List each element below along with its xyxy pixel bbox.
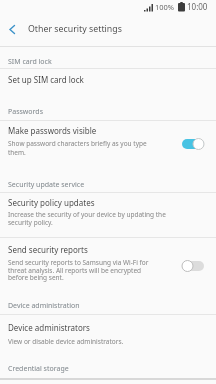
staticText: Send security reports to Samsung via Wi-… [8,258,149,267]
button[interactable] [182,138,206,150]
button[interactable]: Send security reports [0,238,216,290]
staticText: before being sent. [8,273,64,282]
button[interactable]: Make passwords visible [0,121,216,162]
staticText: them. [8,148,26,157]
button[interactable]: Security policy updates [0,193,216,237]
staticText: Security policy updates [8,197,95,208]
staticText: Passwords [8,107,44,117]
staticText: Device administrators [8,322,90,333]
staticText: Make passwords visible [8,125,97,136]
staticText: Set up SIM card lock [8,74,84,85]
staticText: Show password characters briefly as you … [8,139,147,148]
staticText: 10:00 [187,1,208,12]
staticText: 100% [155,2,175,12]
staticText: Other security settings [28,23,122,35]
staticText: View or disable device administrators. [8,337,124,346]
staticText: Security update service [8,180,85,190]
button[interactable] [0,14,28,44]
staticText: security policy. [8,218,53,227]
staticText: Increase the security of your device by … [8,210,166,219]
staticText: threat analysis. All reports will be enc… [8,266,142,275]
staticText: Device administration [8,301,80,311]
button[interactable] [182,260,206,272]
button[interactable]: Device administrators [0,315,216,352]
button[interactable]: Set up SIM card lock [0,69,216,98]
staticText: Send security reports [8,244,88,255]
staticText: SIM card lock [8,57,52,67]
staticText: Credential storage [8,364,69,374]
